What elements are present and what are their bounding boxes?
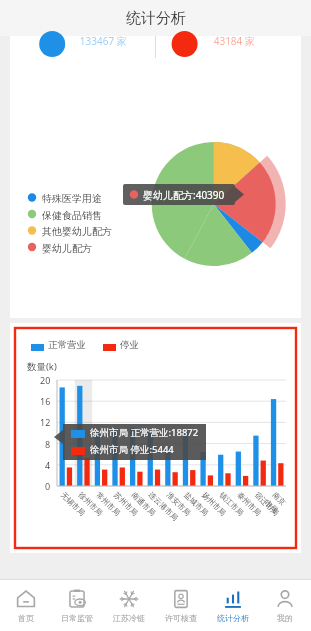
staticText: 首页 bbox=[18, 613, 34, 623]
staticText: 江苏冷链 bbox=[113, 613, 145, 623]
button[interactable]: 江苏冷链 bbox=[103, 580, 155, 631]
staticText: 我的 bbox=[277, 613, 293, 623]
button[interactable]: 统计分析 bbox=[207, 580, 259, 631]
button[interactable]: 我的 bbox=[259, 580, 311, 631]
staticText: 日常监管 bbox=[61, 613, 93, 623]
button[interactable]: 日常监管 bbox=[51, 580, 103, 631]
button[interactable]: 许可核查 bbox=[155, 580, 207, 631]
staticText: 统计分析 bbox=[217, 613, 249, 623]
staticText: 统计分析 bbox=[126, 9, 186, 28]
staticText: 许可核查 bbox=[165, 613, 197, 623]
button[interactable] bbox=[15, 328, 296, 548]
button[interactable]: 首页 bbox=[0, 580, 51, 631]
